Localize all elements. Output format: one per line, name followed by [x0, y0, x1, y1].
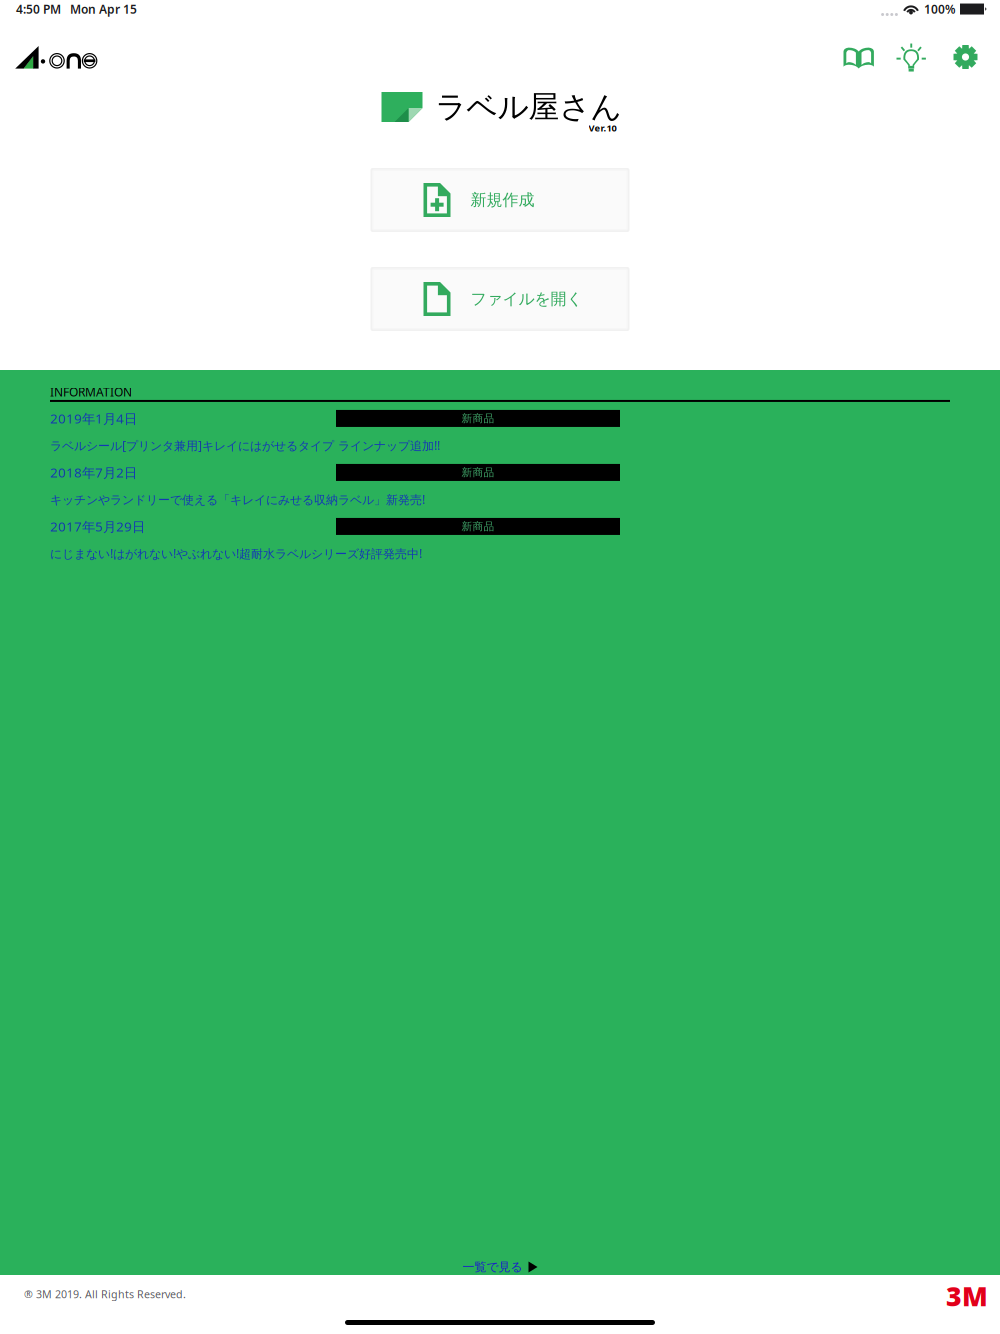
- staticText: ファイルを開く: [470, 289, 582, 309]
- staticText: 新商品: [461, 412, 494, 425]
- staticText: ® 3M 2019. All Rights Reserved.: [24, 1287, 186, 1301]
- staticText: ラベルシール[プリンタ兼用]キレイにはがせるタイプ ラインナップ追加!!: [50, 437, 440, 453]
- button[interactable]: 2018年7月2日: [50, 459, 1000, 513]
- button[interactable]: Manual: [830, 27, 888, 78]
- button[interactable]: Settings: [943, 27, 989, 78]
- staticText: キッチンやランドリーで使える「キレイにみせる収納ラベル」新発売!: [50, 491, 425, 507]
- staticText: にじまない!はがれない!やぶれない!超耐水ラベルシリーズ好評発売中!: [50, 545, 422, 561]
- button[interactable]: 2019年1月4日: [50, 405, 1000, 459]
- staticText: 新商品: [461, 466, 494, 479]
- staticText: 100%: [924, 1, 956, 17]
- button[interactable]: 2017年5月29日: [50, 513, 1000, 567]
- button[interactable]: 一覧で見る: [0, 1244, 1000, 1275]
- staticText: 4:50 PM: [16, 1, 61, 17]
- button[interactable]: Tips: [888, 27, 943, 78]
- staticText: INFORMATION: [50, 384, 132, 400]
- button[interactable]: ファイルを開く: [370, 267, 629, 331]
- staticText: 一覧で見る: [462, 1260, 522, 1274]
- staticText: 2019年1月4日: [50, 410, 137, 427]
- staticText: 2018年7月2日: [50, 464, 137, 481]
- staticText: 新商品: [461, 520, 494, 533]
- button[interactable]: 新規作成: [370, 168, 629, 232]
- staticText: ラベル屋さん: [435, 88, 621, 126]
- staticText: 新規作成: [470, 190, 534, 210]
- staticText: 3M: [946, 1278, 988, 1314]
- staticText: Mon Apr 15: [70, 1, 137, 17]
- staticText: Ver.10: [588, 122, 616, 134]
- staticText: 2017年5月29日: [50, 518, 145, 535]
